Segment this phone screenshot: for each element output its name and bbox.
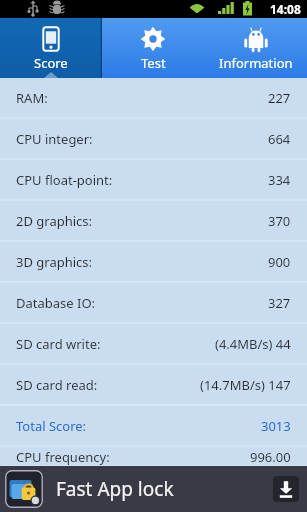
staticText: CPU integer:: [16, 130, 93, 148]
button[interactable]: Information: [204, 18, 307, 78]
staticText: SD card write:: [16, 335, 101, 353]
staticText: CPU frequency:: [16, 448, 110, 466]
staticText: 3D graphics:: [16, 253, 93, 271]
staticText: Fast App lock: [56, 476, 174, 502]
staticText: (14.7MB/s) 147: [200, 376, 291, 394]
staticText: 996.00: [250, 448, 291, 466]
button[interactable]: Score: [0, 18, 102, 78]
button[interactable]: SD card write:: [0, 324, 307, 364]
staticText: 14:08: [270, 1, 301, 17]
button[interactable]: CPU integer:: [0, 119, 307, 159]
staticText: Score: [34, 54, 68, 72]
button[interactable]: 2D graphics:: [0, 201, 307, 241]
staticText: 327: [268, 294, 291, 312]
button[interactable]: 3D graphics:: [0, 242, 307, 282]
button[interactable]: RAM:: [0, 78, 307, 118]
button[interactable]: Fast App lock: [0, 466, 307, 512]
staticText: 227: [268, 89, 291, 107]
staticText: Test: [141, 54, 166, 72]
staticText: 3013: [261, 417, 291, 435]
button[interactable]: CPU frequency:: [0, 447, 307, 466]
button[interactable]: Download: [273, 476, 299, 502]
staticText: Information: [219, 54, 293, 72]
staticText: SD card read:: [16, 376, 98, 394]
button[interactable]: Database IO:: [0, 283, 307, 323]
staticText: 334: [268, 171, 291, 189]
staticText: (4.4MB/s) 44: [215, 335, 291, 353]
staticText: Total Score:: [16, 417, 87, 435]
staticText: 2D graphics:: [16, 212, 93, 230]
staticText: RAM:: [16, 89, 48, 107]
button[interactable]: Test: [102, 18, 204, 78]
staticText: 370: [268, 212, 291, 230]
button[interactable]: CPU float-point:: [0, 160, 307, 200]
staticText: 664: [268, 130, 291, 148]
staticText: CPU float-point:: [16, 171, 113, 189]
button[interactable]: SD card read:: [0, 365, 307, 405]
staticText: Database IO:: [16, 294, 96, 312]
button[interactable]: Total Score:: [0, 406, 307, 446]
staticText: 900: [268, 253, 291, 271]
